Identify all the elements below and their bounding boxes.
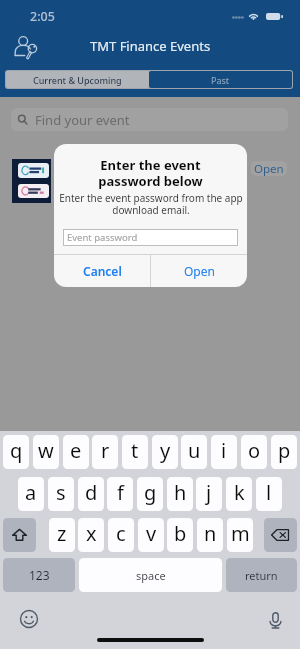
staticText: t — [131, 437, 139, 464]
staticText: i — [221, 437, 227, 464]
staticText: d — [85, 479, 98, 506]
button[interactable]: Dictation — [264, 609, 286, 631]
staticText: Enter the event password from the app do… — [59, 191, 243, 217]
staticText: x — [86, 520, 97, 547]
button[interactable]: Cancel — [54, 255, 150, 287]
staticText: Past — [211, 74, 230, 86]
staticText: f — [117, 479, 124, 506]
staticText: q — [10, 437, 23, 464]
staticText: 123 — [29, 567, 50, 583]
button[interactable]: l — [256, 477, 282, 511]
staticText: 2:05 — [30, 8, 55, 25]
button[interactable]: b — [167, 518, 193, 552]
button[interactable]: i — [211, 435, 237, 469]
button[interactable]: o — [241, 435, 267, 469]
staticText: Enter the event password below — [98, 156, 203, 190]
staticText: p — [278, 437, 291, 464]
button[interactable]: x — [78, 518, 104, 552]
button[interactable]: y — [152, 435, 178, 469]
button[interactable]: v — [138, 518, 164, 552]
staticText: u — [188, 437, 201, 464]
button[interactable]: c — [108, 518, 134, 552]
staticText: r — [101, 437, 110, 464]
button[interactable]: Emoji — [18, 608, 40, 630]
button[interactable]: k — [226, 477, 252, 511]
staticText: Open — [254, 161, 284, 176]
button[interactable]: space — [79, 558, 222, 592]
button[interactable]: f — [107, 477, 133, 511]
staticText: v — [146, 520, 157, 547]
staticText: Event password — [67, 231, 138, 244]
button[interactable]: Event password — [63, 229, 238, 246]
staticText: h — [174, 479, 187, 506]
button[interactable]: Find your event — [11, 108, 288, 131]
staticText: g — [144, 479, 157, 506]
staticText: e — [70, 437, 82, 464]
staticText: s — [56, 479, 66, 506]
staticText: Open — [184, 263, 215, 279]
button[interactable]: Current & Upcoming — [6, 71, 149, 88]
button[interactable]: j — [196, 477, 222, 511]
button[interactable]: return — [226, 558, 297, 592]
staticText: o — [248, 437, 261, 464]
button[interactable]: Find people — [12, 33, 38, 60]
staticText: TMT Finance Events — [90, 37, 211, 55]
button[interactable]: g — [137, 477, 163, 511]
staticText: z — [57, 520, 67, 547]
staticText: b — [174, 520, 187, 547]
staticText: Find your event — [35, 111, 130, 129]
button[interactable]: z — [49, 518, 75, 552]
staticText: n — [204, 520, 217, 547]
button[interactable]: Shift — [3, 518, 36, 552]
button[interactable]: a — [18, 477, 44, 511]
button[interactable]: q — [3, 435, 29, 469]
button[interactable]: d — [78, 477, 104, 511]
staticText: j — [206, 479, 212, 506]
staticText: Cancel — [83, 263, 122, 279]
button[interactable]: r — [92, 435, 118, 469]
staticText: a — [25, 479, 37, 506]
button[interactable]: s — [48, 477, 74, 511]
button[interactable]: Open — [251, 161, 287, 176]
button[interactable]: m — [227, 518, 253, 552]
button[interactable]: h — [167, 477, 193, 511]
button[interactable]: e — [63, 435, 89, 469]
staticText: k — [234, 479, 245, 506]
staticText: c — [116, 520, 126, 547]
staticText: m — [231, 520, 250, 547]
button[interactable]: n — [197, 518, 223, 552]
button[interactable]: Backspace — [264, 518, 297, 552]
button[interactable]: 123 — [3, 558, 75, 592]
button[interactable]: p — [271, 435, 297, 469]
staticText: space — [136, 568, 166, 583]
staticText: return — [245, 568, 278, 583]
staticText: y — [160, 437, 171, 464]
button[interactable]: Past — [149, 71, 292, 88]
staticText: Current & Upcoming — [33, 74, 122, 86]
button[interactable]: t — [122, 435, 148, 469]
button[interactable]: w — [33, 435, 59, 469]
staticText: l — [266, 479, 272, 506]
staticText: w — [38, 437, 54, 464]
button[interactable]: u — [181, 435, 207, 469]
button[interactable]: Open — [151, 255, 247, 287]
